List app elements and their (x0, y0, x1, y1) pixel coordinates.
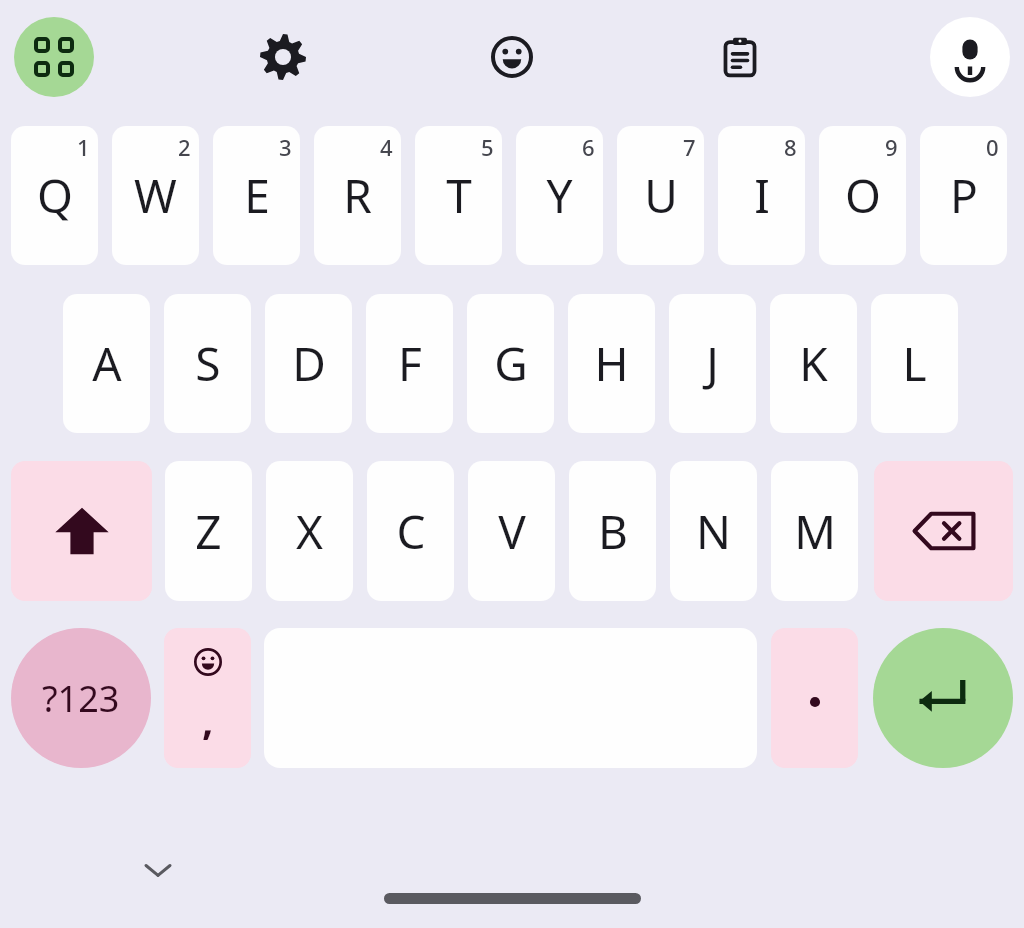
staticText: 9 (885, 132, 898, 162)
button[interactable]: F (366, 294, 453, 433)
staticText: Z (195, 500, 222, 563)
staticText: 1 (77, 132, 90, 162)
button[interactable]: J (669, 294, 756, 433)
staticText: L (902, 332, 927, 395)
staticText: U (644, 164, 678, 227)
staticText: , (202, 692, 214, 746)
button[interactable]: P (920, 126, 1007, 265)
button[interactable]: Y (516, 126, 603, 265)
staticText: T (446, 164, 472, 227)
button[interactable]: Shift (11, 461, 152, 601)
staticText: O (845, 164, 881, 227)
button[interactable]: Hide keyboard (128, 840, 188, 900)
button[interactable]: Backspace (874, 461, 1013, 601)
staticText: E (244, 164, 270, 227)
staticText: 2 (178, 132, 191, 162)
staticText: G (494, 332, 528, 395)
button[interactable]: Emoji (472, 17, 552, 97)
button[interactable]: Z (165, 461, 252, 601)
staticText: K (799, 332, 828, 395)
button[interactable]: X (266, 461, 353, 601)
staticText: N (696, 500, 731, 563)
staticText: V (498, 500, 526, 563)
staticText: 8 (784, 132, 797, 162)
button[interactable]: C (367, 461, 454, 601)
button[interactable]: U (617, 126, 704, 265)
button[interactable]: N (670, 461, 757, 601)
staticText: 0 (986, 132, 999, 162)
button[interactable]: L (871, 294, 958, 433)
button[interactable]: T (415, 126, 502, 265)
staticText: D (292, 332, 326, 395)
button[interactable]: ?123 (11, 628, 151, 768)
button[interactable]: Period (771, 628, 858, 768)
button[interactable]: Voice input (930, 17, 1010, 97)
button[interactable]: K (770, 294, 857, 433)
button[interactable]: Enter (873, 628, 1013, 768)
button[interactable]: G (467, 294, 554, 433)
staticText: 6 (582, 132, 595, 162)
button[interactable]: W (112, 126, 199, 265)
staticText: Q (37, 164, 73, 227)
button[interactable]: O (819, 126, 906, 265)
staticText: C (396, 500, 426, 563)
button[interactable]: M (771, 461, 858, 601)
button[interactable]: Q (11, 126, 98, 265)
staticText: J (706, 332, 719, 395)
staticText: 3 (279, 132, 292, 162)
button[interactable]: I (718, 126, 805, 265)
button[interactable]: D (265, 294, 352, 433)
staticText: X (296, 500, 323, 563)
button[interactable]: Apps (14, 17, 94, 97)
staticText: B (598, 500, 628, 563)
staticText: M (794, 500, 836, 563)
button[interactable]: Comma and emoji (164, 628, 251, 768)
button[interactable]: H (568, 294, 655, 433)
button[interactable]: Clipboard (700, 17, 780, 97)
button[interactable]: B (569, 461, 656, 601)
staticText: S (195, 332, 221, 395)
staticText: A (92, 332, 122, 395)
button[interactable]: A (63, 294, 150, 433)
staticText: 5 (481, 132, 494, 162)
button[interactable]: R (314, 126, 401, 265)
staticText: ?123 (42, 674, 120, 723)
button[interactable]: V (468, 461, 555, 601)
button[interactable]: Settings (243, 17, 323, 97)
button[interactable]: E (213, 126, 300, 265)
staticText: F (398, 332, 422, 395)
staticText: I (754, 164, 770, 227)
staticText: Y (546, 164, 573, 227)
staticText: H (594, 332, 629, 395)
staticText: P (950, 164, 978, 227)
staticText: 7 (683, 132, 696, 162)
button[interactable]: S (164, 294, 251, 433)
staticText: R (343, 164, 372, 227)
staticText: 4 (380, 132, 393, 162)
staticText: W (134, 164, 177, 227)
